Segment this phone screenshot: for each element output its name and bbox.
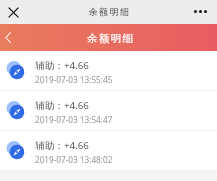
button[interactable]: Back	[0, 24, 16, 51]
staticText: 余额明细	[87, 32, 135, 45]
staticText: 2019-07-03 13:48:02	[35, 154, 113, 165]
staticText: 2019-07-03 13:54:47	[35, 114, 113, 125]
button[interactable]: More options	[194, 2, 207, 21]
staticText: 辅助：+4.66	[35, 99, 89, 112]
staticText: 辅助：+4.66	[35, 139, 89, 152]
button[interactable]: Close	[4, 3, 23, 22]
staticText: 辅助：+4.66	[35, 59, 89, 72]
button[interactable]: 辅助：+4.66	[0, 51, 217, 90]
button[interactable]: 辅助：+4.66	[0, 131, 217, 170]
staticText: 余额明细	[88, 6, 130, 17]
button[interactable]: 辅助：+4.66	[0, 91, 217, 130]
staticText: 2019-07-03 13:55:45	[35, 74, 113, 85]
